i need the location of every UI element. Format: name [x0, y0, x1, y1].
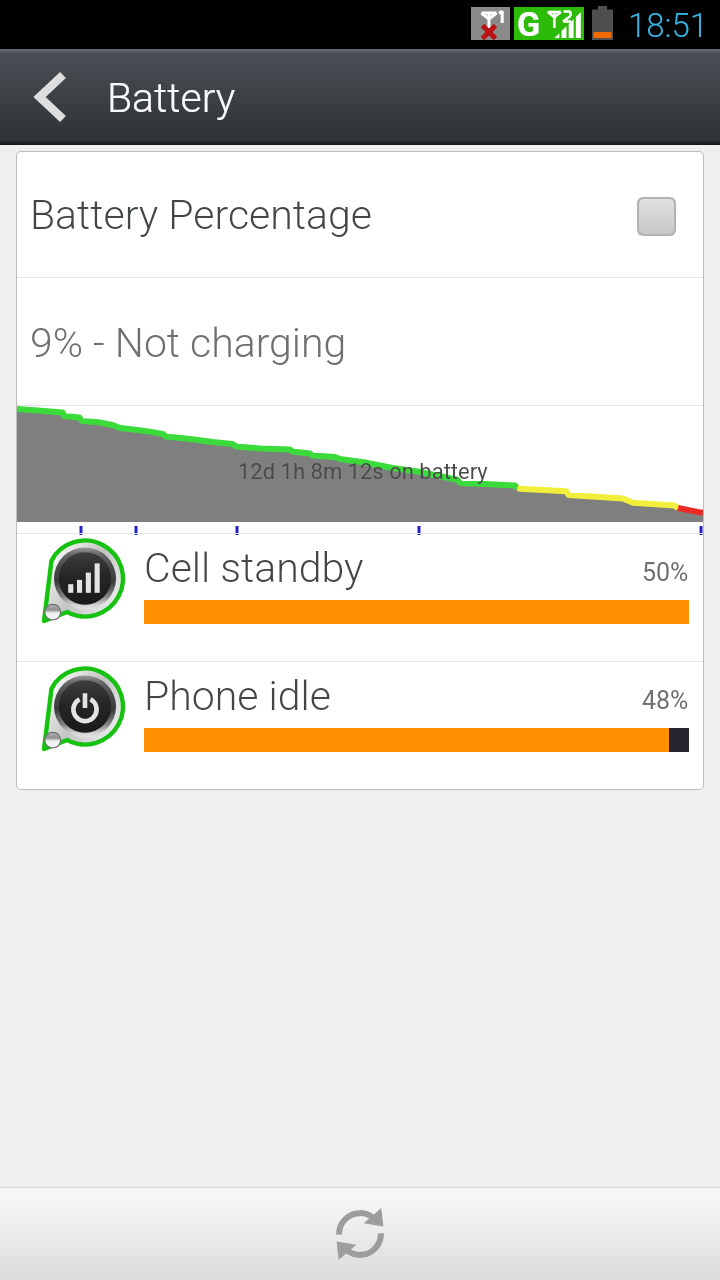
staticText: 50%: [642, 558, 689, 587]
staticText: Battery Percentage: [30, 191, 372, 239]
button[interactable]: Phone idle: [17, 662, 703, 789]
staticText: 18:51: [628, 6, 709, 45]
staticText: 12d 1h 8m 12s on battery: [238, 459, 488, 485]
staticText: Cell standby: [144, 544, 364, 592]
staticText: Battery: [107, 74, 236, 122]
staticText: 9% - Not charging: [30, 319, 347, 367]
staticText: G: [517, 4, 541, 37]
button[interactable]: Navigate up: [0, 49, 96, 145]
staticText: Phone idle: [144, 672, 331, 720]
button[interactable]: Battery Percentage: [17, 152, 703, 277]
button[interactable]: Refresh: [314, 1188, 406, 1280]
staticText: 48%: [642, 686, 689, 715]
button[interactable]: Cell standby: [17, 534, 703, 661]
